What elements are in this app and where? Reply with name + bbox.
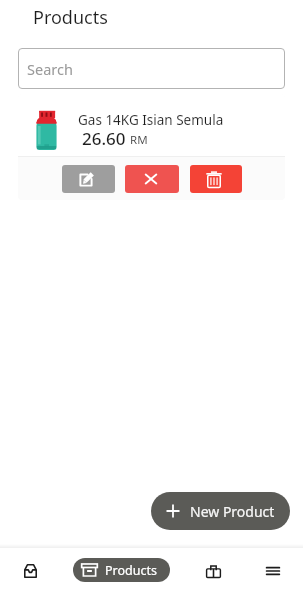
staticText: 26.60	[82, 127, 126, 150]
button[interactable]: Products	[73, 558, 170, 582]
button[interactable]: Delete	[190, 165, 242, 193]
staticText: Products	[33, 5, 108, 30]
button[interactable]: New Product	[151, 492, 290, 530]
button[interactable]: Edit	[62, 165, 115, 193]
button[interactable]: Menu	[255, 553, 291, 589]
button[interactable]: Cancel	[125, 165, 179, 193]
staticText: Products	[105, 562, 157, 579]
staticText: Search	[27, 59, 73, 79]
button[interactable]: Briefcase	[195, 553, 231, 589]
button[interactable]: Search	[18, 48, 285, 89]
button[interactable]: Gas 14KG Isian Semula	[18, 94, 285, 200]
button[interactable]: Inbox	[12, 553, 48, 589]
staticText: New Product	[190, 502, 275, 521]
staticText: RM	[130, 132, 148, 148]
staticText: Gas 14KG Isian Semula	[78, 111, 224, 129]
